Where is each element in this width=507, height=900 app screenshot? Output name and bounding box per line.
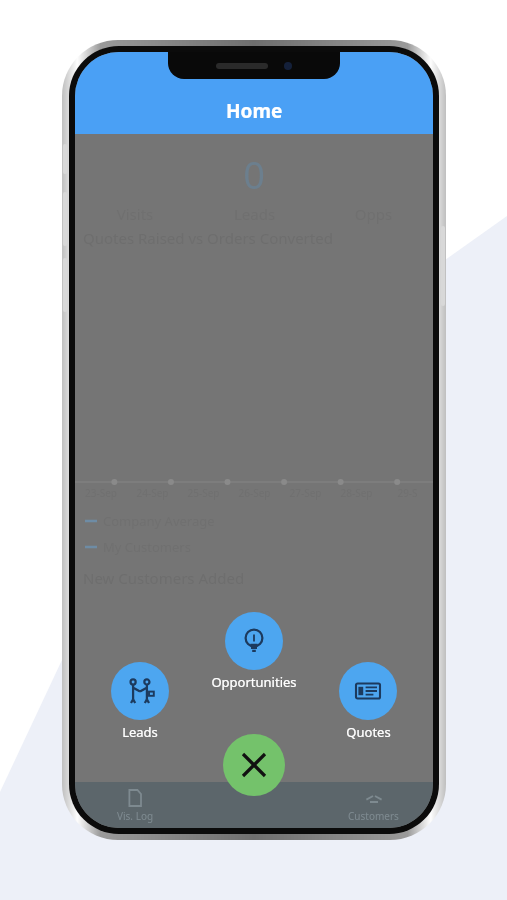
button[interactable]: Leads [111,662,169,741]
staticText: Quotes [346,723,391,741]
staticText: Customers [348,809,399,823]
staticText: Opportunities [211,673,297,691]
button[interactable]: Customers [314,788,433,823]
staticText: Vis. Log [117,809,154,823]
staticText: Home [226,98,283,124]
button[interactable]: Vis. Log [75,788,195,823]
button[interactable]: Close menu [223,734,285,796]
staticText: Leads [122,723,158,741]
button[interactable]: Quotes [339,662,397,741]
button[interactable]: Opportunities [211,612,297,691]
